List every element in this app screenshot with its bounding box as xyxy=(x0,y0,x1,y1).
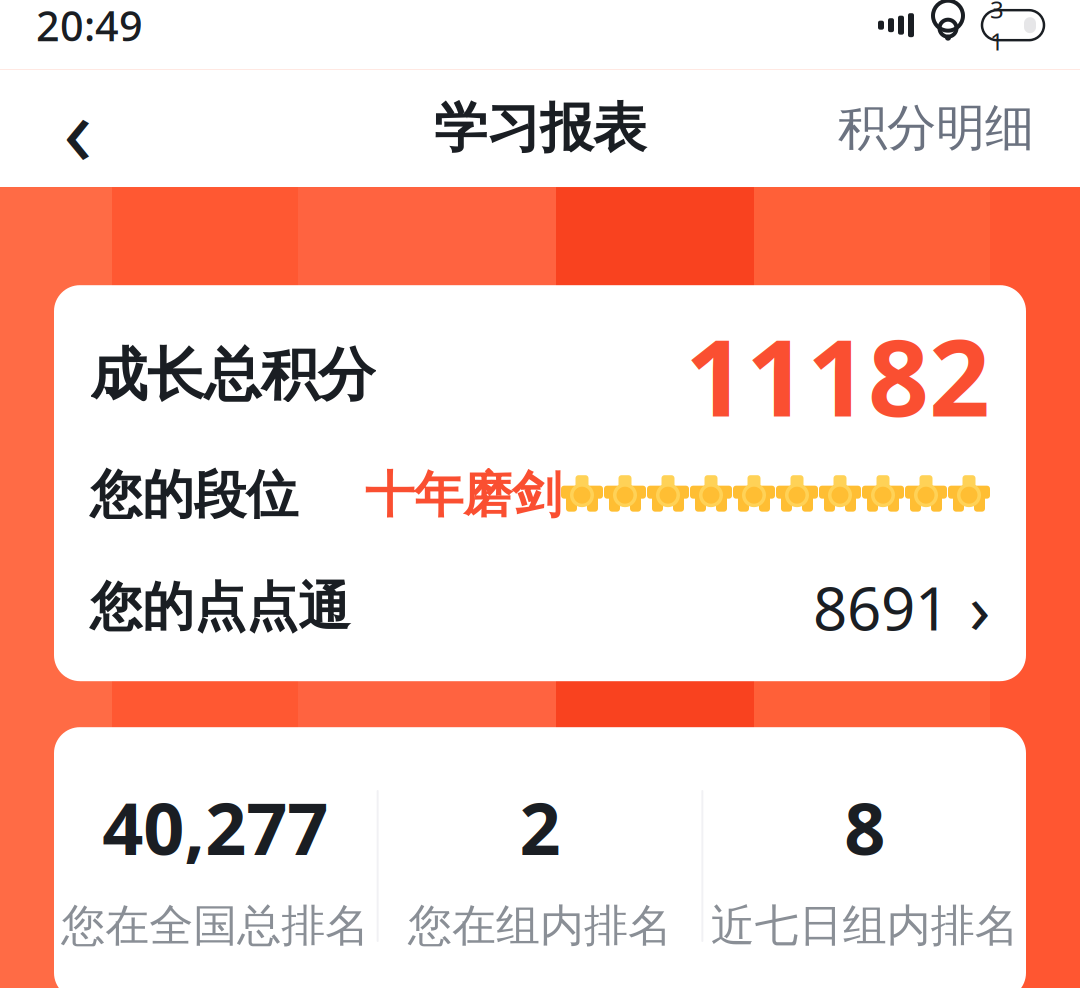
staticText: 您在组内排名 xyxy=(408,899,672,953)
button[interactable]: 您的点点通 xyxy=(90,549,990,665)
button[interactable]: 积分明细 xyxy=(830,78,1042,178)
staticText: 您的段位 xyxy=(90,463,298,527)
staticText: 您的点点通 xyxy=(90,575,350,639)
staticText: 8691 xyxy=(813,567,949,647)
staticText: 31 xyxy=(990,0,1004,57)
button[interactable]: 返回 xyxy=(38,78,118,178)
staticText: 成长总积分 xyxy=(90,340,375,410)
staticText: ‹ xyxy=(63,64,93,192)
staticText: 十年磨剑 xyxy=(365,465,561,525)
staticText: 2 xyxy=(519,779,560,875)
staticText: 40,277 xyxy=(102,779,328,875)
staticText: › xyxy=(969,561,990,653)
staticText: 您在全国总排名 xyxy=(61,899,369,953)
staticText: 近七日组内排名 xyxy=(711,899,1019,953)
staticText: 20:49 xyxy=(36,0,143,53)
staticText: 学习报表 xyxy=(434,95,646,161)
staticText: 8 xyxy=(844,779,885,875)
staticText: 11182 xyxy=(685,304,990,446)
staticText: 积分明细 xyxy=(838,98,1034,158)
